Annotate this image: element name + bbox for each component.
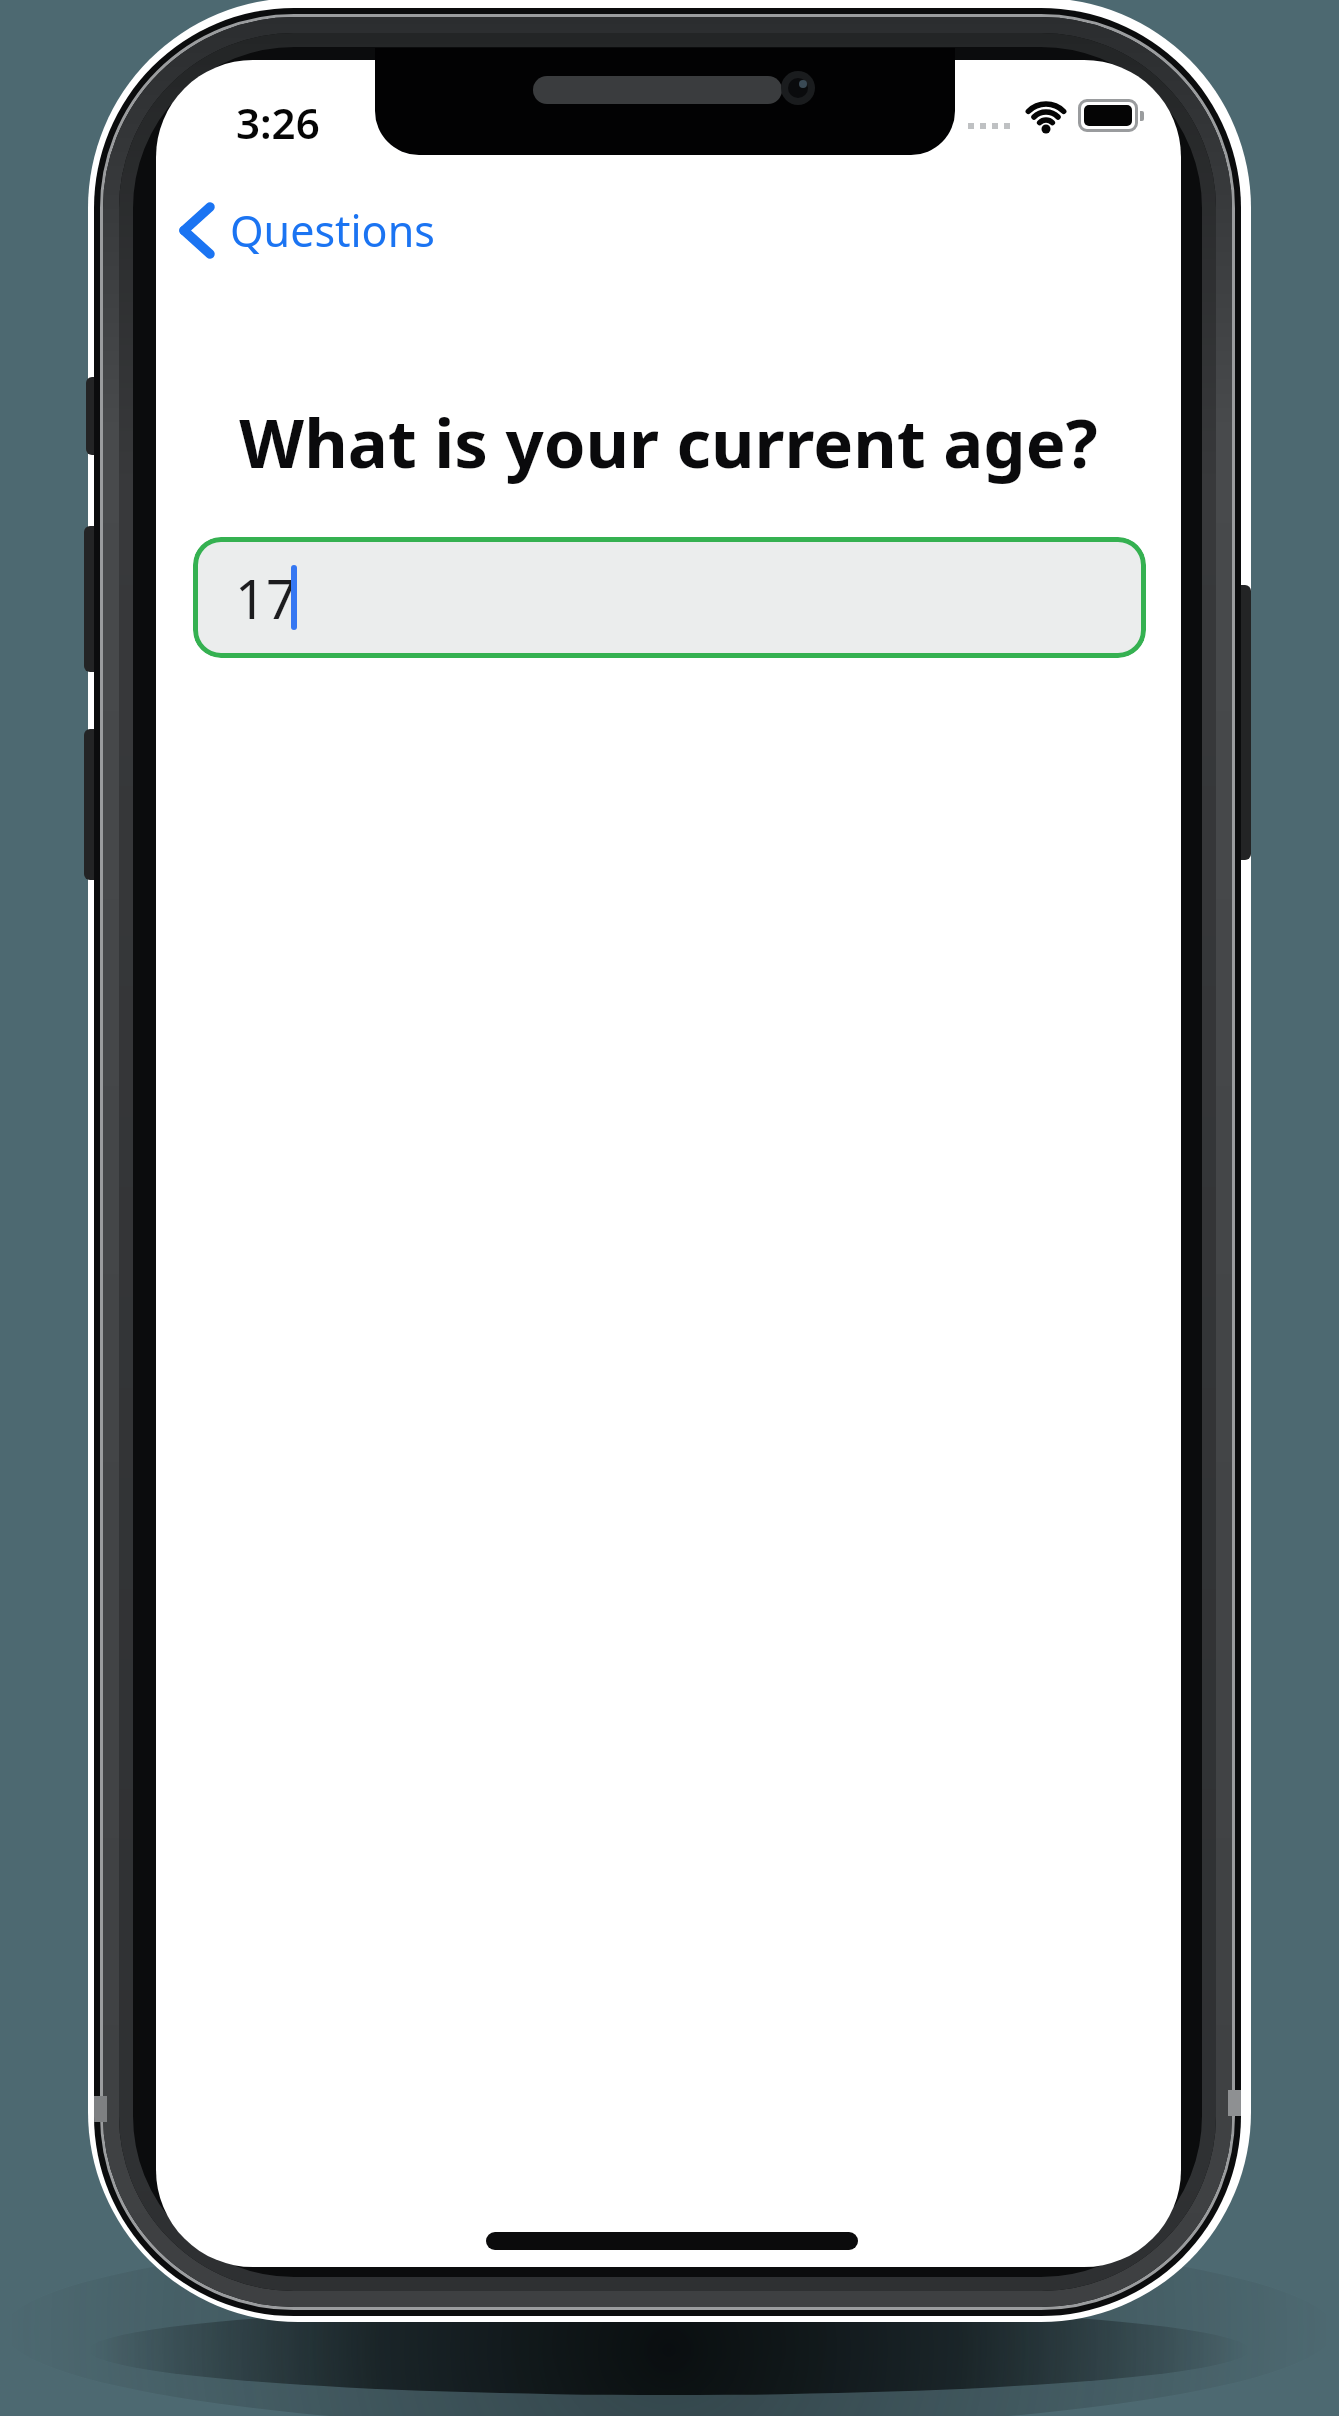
staticText: What is your current age? <box>156 396 1181 487</box>
staticText: 17 <box>235 561 297 635</box>
button[interactable]: 17 <box>193 537 1146 658</box>
button[interactable]: Questions <box>176 195 456 270</box>
staticText: Questions <box>230 201 435 260</box>
staticText: 3:26 <box>236 94 320 151</box>
